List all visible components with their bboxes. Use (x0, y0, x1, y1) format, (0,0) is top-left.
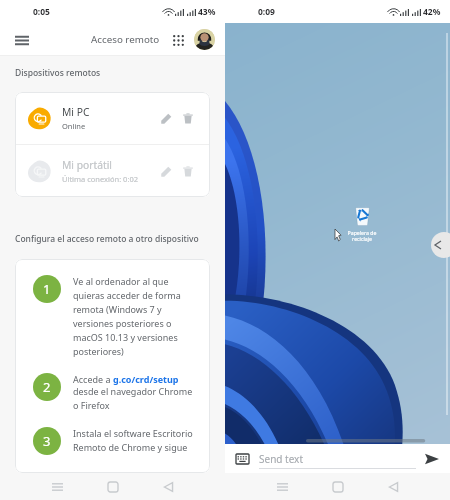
button[interactable]: Send (422, 449, 442, 469)
button[interactable]: Recents (269, 474, 295, 500)
button[interactable]: Mi portátil (15, 145, 210, 197)
staticText: Ve al ordenador al que quieras acceder d… (73, 275, 197, 357)
staticText: Mi PC (62, 105, 90, 119)
button[interactable]: Expand toolbar (431, 232, 450, 258)
staticText: Dispositivos remotos (15, 67, 101, 79)
button[interactable]: Menu (10, 28, 34, 52)
button[interactable]: Home (325, 474, 351, 500)
staticText: Papelera de reciclaje (341, 229, 383, 243)
staticText: 42% (423, 6, 441, 18)
staticText: 0:09 (258, 6, 275, 18)
staticText: 0:05 (33, 6, 50, 18)
staticText: desde el navegador Chrome o Firefox (73, 385, 197, 411)
button[interactable]: Delete (177, 107, 199, 129)
button[interactable]: Home (100, 474, 126, 500)
staticText: 3 (43, 432, 51, 450)
staticText: 43% (198, 6, 216, 18)
button[interactable]: Edit (155, 107, 177, 129)
button[interactable]: Back (380, 474, 406, 500)
button[interactable]: Recents (44, 474, 70, 500)
staticText: Online (62, 121, 86, 131)
staticText: Send text (259, 452, 304, 466)
staticText: Accede a (73, 373, 113, 385)
staticText: Acceso remoto (91, 33, 160, 46)
staticText: Configura el acceso remoto a otro dispos… (15, 233, 199, 245)
button[interactable]: Delete (177, 160, 199, 182)
staticText: g.co/crd/setup (113, 373, 179, 385)
button[interactable]: Mi PC (15, 92, 210, 144)
button[interactable]: Back (155, 474, 181, 500)
button[interactable]: Apps (168, 30, 188, 50)
staticText: 2 (43, 378, 51, 396)
staticText: Instala el software Escritorio Remoto de… (73, 427, 197, 457)
staticText: Mi portátil (62, 158, 113, 172)
button[interactable]: Account (194, 29, 215, 50)
button[interactable]: Edit (155, 160, 177, 182)
button[interactable]: Keyboard (233, 450, 251, 468)
staticText: 1 (43, 280, 51, 298)
staticText: Última conexión: 0:02 (62, 174, 138, 184)
